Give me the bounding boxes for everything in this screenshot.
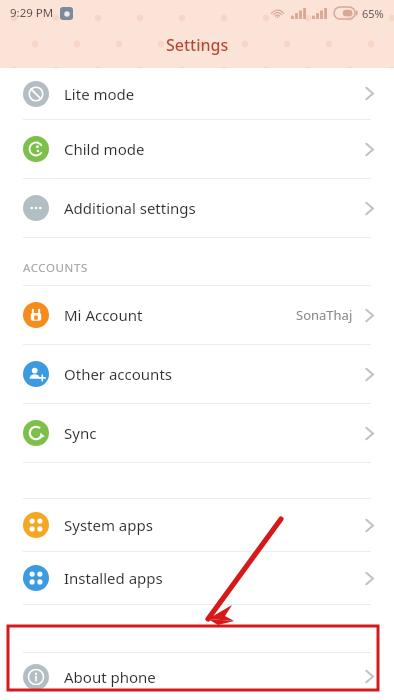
staticText: Child mode [64, 139, 145, 159]
staticText: ACCOUNTS [23, 260, 88, 276]
staticText: Additional settings [64, 198, 196, 218]
staticText: 65% [362, 6, 384, 21]
staticText: Mi Account [64, 305, 143, 325]
button[interactable]: System apps [0, 499, 394, 551]
button[interactable]: About phone [0, 653, 394, 700]
staticText: About phone [64, 667, 156, 687]
staticText: Installed apps [64, 568, 163, 588]
button[interactable]: Sync [0, 404, 394, 462]
staticText: Lite mode [64, 84, 135, 104]
button[interactable]: Lite mode [0, 68, 394, 119]
staticText: Other accounts [64, 364, 172, 384]
staticText: System apps [64, 515, 153, 535]
button[interactable]: Additional settings [0, 179, 394, 237]
staticText: SonaThaj [296, 306, 353, 324]
button[interactable]: Child mode [0, 120, 394, 178]
button[interactable]: Other accounts [0, 345, 394, 403]
button[interactable]: Mi Account [0, 286, 394, 344]
staticText: Sync [64, 423, 97, 443]
button[interactable]: Installed apps [0, 552, 394, 604]
staticText: 9:29 PM [10, 5, 54, 21]
staticText: Settings [166, 34, 229, 56]
